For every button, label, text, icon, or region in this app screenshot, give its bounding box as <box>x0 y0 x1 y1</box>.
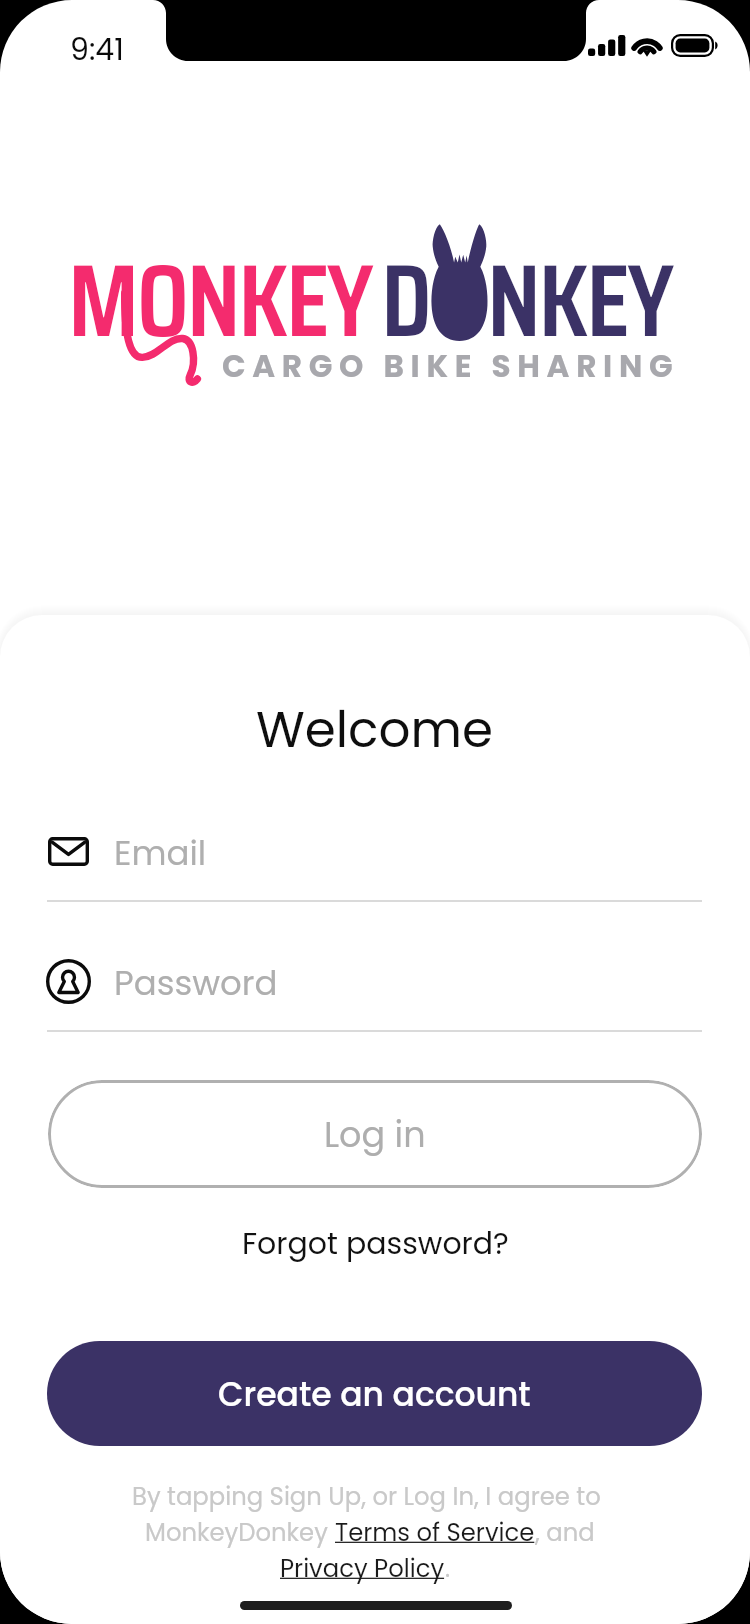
staticText: MonkeyDonkey <box>145 1515 335 1549</box>
staticText: Log in <box>324 1110 426 1159</box>
staticText: D <box>381 219 430 381</box>
staticText: NKEY <box>487 219 672 381</box>
button[interactable]: Terms of Service <box>335 1515 535 1549</box>
button[interactable]: Forgot password? <box>222 1216 528 1272</box>
staticText: Welcome <box>256 695 493 765</box>
staticText: , and <box>535 1515 595 1549</box>
button[interactable]: Create an account <box>47 1341 702 1446</box>
staticText: By tapping Sign Up, or Log In, I agree t… <box>132 1479 601 1513</box>
button[interactable]: Privacy Policy <box>280 1551 445 1585</box>
staticText: Create an account <box>218 1371 531 1417</box>
staticText: Password <box>114 959 278 1007</box>
staticText: Email <box>114 829 207 877</box>
staticText: Terms of Service <box>335 1515 535 1549</box>
staticText: Privacy Policy <box>280 1551 445 1585</box>
button[interactable]: Log in <box>48 1080 702 1188</box>
staticText: . <box>445 1551 451 1585</box>
staticText: Forgot password? <box>242 1223 509 1265</box>
staticText: MONKEY <box>68 219 372 381</box>
staticText: 9:41 <box>70 29 124 71</box>
staticText: CARGO BIKE SHARING <box>222 344 680 387</box>
